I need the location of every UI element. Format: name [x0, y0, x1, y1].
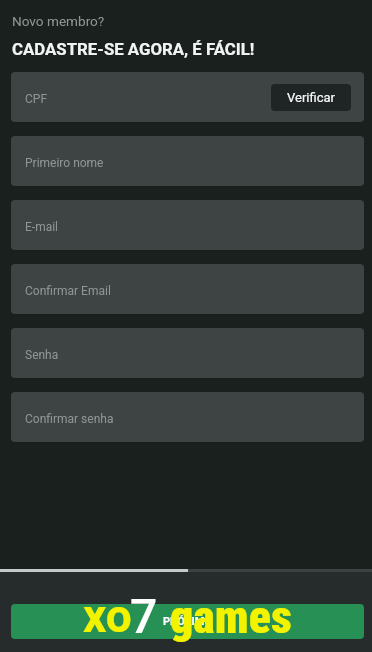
staticText: Confirmar senha	[25, 412, 114, 426]
button[interactable]: Verificar	[271, 84, 351, 111]
staticText: Verificar	[287, 90, 335, 105]
staticText: CPF	[25, 92, 48, 106]
staticText: Confirmar Email	[25, 284, 111, 298]
staticText: E-mail	[25, 220, 59, 234]
staticText: games	[170, 590, 292, 644]
staticText: 7	[130, 588, 158, 644]
staticText: Primeiro nome	[25, 156, 104, 170]
button[interactable]: Confirmar senha	[11, 392, 364, 442]
button[interactable]: CPF	[11, 72, 364, 122]
staticText: Novo membro?	[12, 13, 105, 29]
button[interactable]: Confirmar Email	[11, 264, 364, 314]
staticText: Senha	[25, 348, 59, 362]
button[interactable]: PRÓXIMO	[11, 604, 364, 639]
staticText: PRÓXIMO	[163, 615, 213, 628]
button[interactable]: E-mail	[11, 200, 364, 250]
staticText: CADASTRE-SE AGORA, É FÁCIL!	[12, 39, 255, 59]
button[interactable]: Senha	[11, 328, 364, 378]
staticText: xo	[83, 589, 132, 643]
button[interactable]: Primeiro nome	[11, 136, 364, 186]
